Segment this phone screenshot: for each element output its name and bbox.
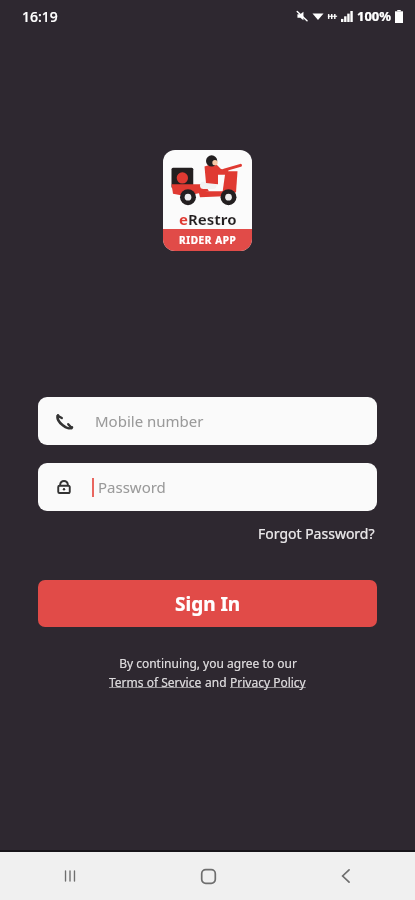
button[interactable]: Forgot Password? [256,521,377,546]
staticText: Privacy Policy [230,674,306,690]
staticText: 100% [357,7,392,25]
staticText: e [179,209,188,229]
button[interactable]: Terms of Service [109,674,202,690]
staticText: Forgot Password? [258,524,375,543]
staticText: Sign In [175,591,241,617]
button[interactable]: Back [277,852,415,900]
staticText: Mobile number [95,411,204,431]
button[interactable]: Mobile number [38,397,377,445]
staticText: 16:19 [22,7,58,26]
button[interactable]: Privacy Policy [230,674,306,690]
button[interactable]: Password [38,463,377,511]
button[interactable]: Recent apps [0,852,139,900]
staticText: Restro [188,209,237,229]
staticText: Password [98,477,166,497]
staticText: and [202,674,230,690]
button[interactable]: Home [139,852,277,900]
button[interactable]: Sign In [38,580,377,627]
staticText: RIDER APP [179,233,237,247]
staticText: By continuing, you agree to our [119,655,297,671]
staticText: Terms of Service [109,674,202,690]
